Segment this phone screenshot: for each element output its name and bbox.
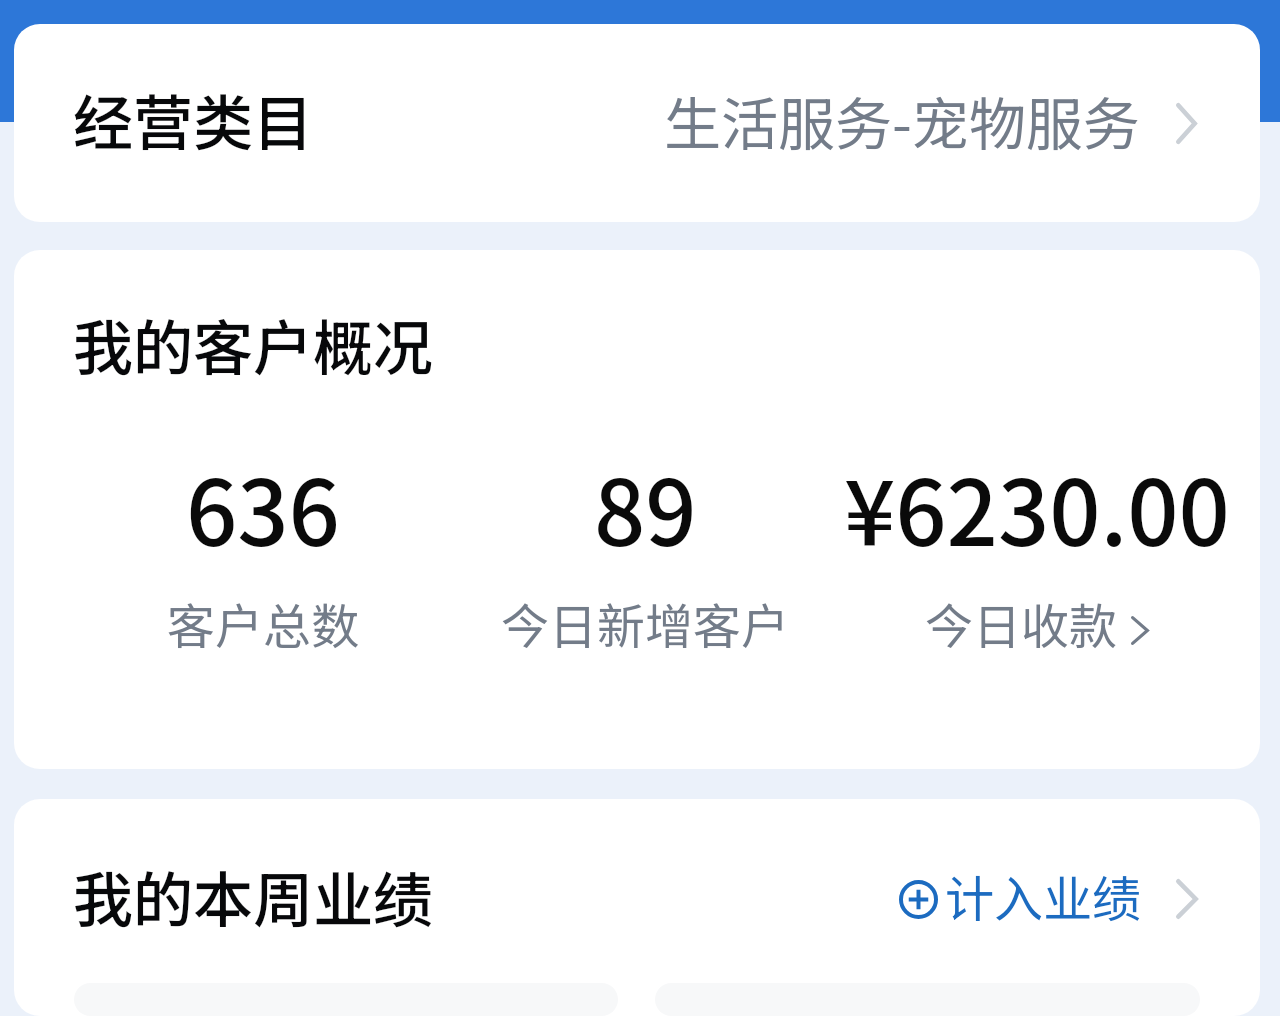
staticText: 生活服务-宠物服务 bbox=[664, 79, 1140, 162]
button[interactable]: 我的本周业绩 bbox=[14, 799, 1260, 983]
button[interactable]: ¥6230.00 bbox=[822, 442, 1252, 658]
staticText: 89 bbox=[594, 442, 697, 572]
staticText: 636 bbox=[186, 442, 340, 572]
button[interactable]: Add to performance bbox=[899, 860, 1142, 931]
staticText: 我的客户概况 bbox=[73, 300, 433, 387]
staticText: 经营类目 bbox=[73, 75, 313, 162]
button[interactable]: 经营类目 bbox=[14, 24, 1260, 222]
staticText: 客户总数 bbox=[167, 588, 360, 658]
staticText: 计入业绩 bbox=[945, 860, 1142, 931]
staticText: 今日新增客户 bbox=[501, 588, 790, 658]
staticText: 今日收款 bbox=[925, 588, 1118, 658]
staticText: ¥6230.00 bbox=[844, 442, 1230, 572]
staticText: 我的本周业绩 bbox=[73, 852, 433, 939]
other: Add to performance bbox=[899, 880, 938, 919]
